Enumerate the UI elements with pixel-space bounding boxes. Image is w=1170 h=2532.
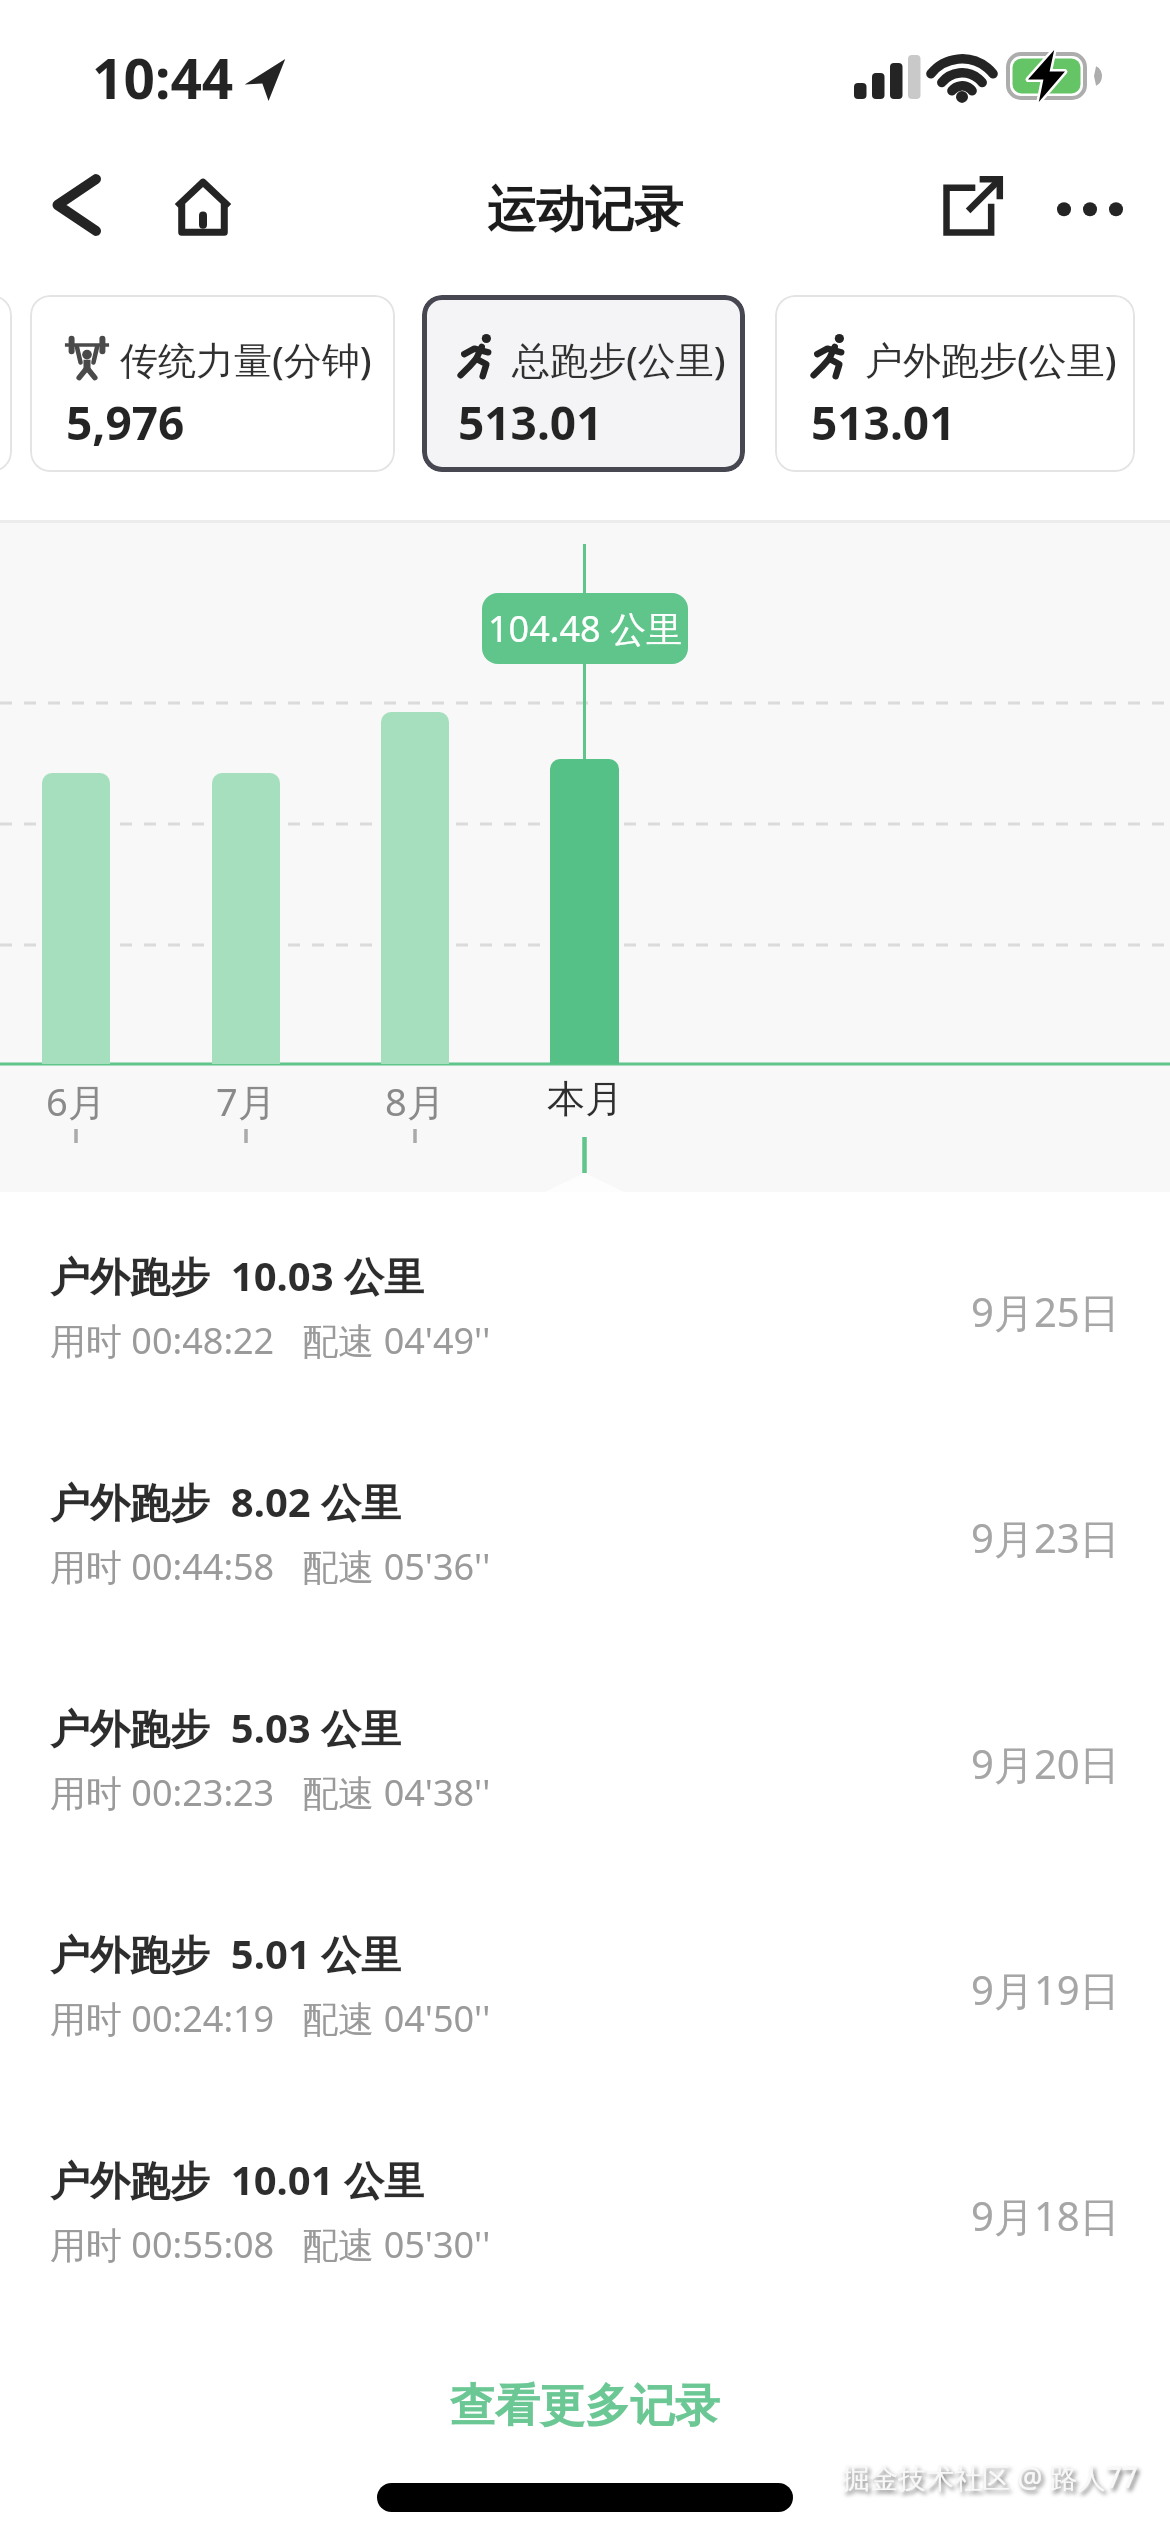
- staticText: 104.48 公里: [488, 604, 682, 653]
- button[interactable]: 查看更多记录: [450, 2378, 720, 2435]
- staticText: 户外跑步 10.01 公里: [50, 2152, 424, 2207]
- button[interactable]: [1050, 178, 1134, 238]
- staticText: 10:44: [92, 40, 234, 115]
- button[interactable]: 户外跑步 5.03 公里: [0, 1644, 1170, 1870]
- staticText: 9月23日: [971, 1510, 1120, 1565]
- staticText: 9月25日: [971, 1284, 1120, 1339]
- staticText: 9月20日: [971, 1736, 1120, 1791]
- button[interactable]: 总跑步(公里): [422, 295, 745, 472]
- button[interactable]: 户外跑步 10.03 公里: [0, 1192, 1170, 1418]
- staticText: 用时 00:24:19 配速 04'50'': [50, 1994, 491, 2043]
- staticText: 查看更多记录: [450, 2378, 720, 2435]
- staticText: 用时 00:44:58 配速 05'36'': [50, 1542, 491, 1591]
- staticText: 9月19日: [971, 1962, 1120, 2017]
- staticText: 6月: [46, 1075, 106, 1127]
- staticText: 户外跑步 5.03 公里: [50, 1700, 402, 1755]
- staticText: 513.01: [811, 391, 956, 454]
- button[interactable]: [165, 170, 241, 246]
- button[interactable]: 户外跑步 10.01 公里: [0, 2096, 1170, 2322]
- button[interactable]: 户外跑步(公里): [775, 295, 1135, 472]
- staticText: 本月: [547, 1075, 623, 1123]
- staticText: 掘金技术社区 @ 路人77: [842, 2458, 1138, 2496]
- button[interactable]: 户外跑步 5.01 公里: [0, 1870, 1170, 2096]
- staticText: 用时 00:23:23 配速 04'38'': [50, 1768, 491, 1817]
- staticText: 8月: [385, 1075, 445, 1127]
- staticText: 用时 00:55:08 配速 05'30'': [50, 2220, 491, 2269]
- staticText: 用时 00:48:22 配速 04'49'': [50, 1316, 491, 1365]
- staticText: 9月18日: [971, 2188, 1120, 2243]
- staticText: 513.01: [458, 391, 603, 454]
- staticText: 户外跑步(公里): [865, 333, 1117, 385]
- staticText: 运动记录: [487, 179, 683, 241]
- staticText: 传统力量(分钟): [120, 333, 372, 385]
- button[interactable]: [935, 172, 1007, 244]
- staticText: 户外跑步 5.01 公里: [50, 1926, 402, 1981]
- button[interactable]: [40, 170, 110, 240]
- staticText: 户外跑步 10.03 公里: [50, 1248, 424, 1303]
- staticText: 7月: [216, 1075, 276, 1127]
- button[interactable]: 传统力量(分钟): [30, 295, 395, 472]
- staticText: 户外跑步 8.02 公里: [50, 1474, 402, 1529]
- staticText: 总跑步(公里): [512, 333, 726, 385]
- staticText: 5,976: [66, 391, 185, 454]
- button[interactable]: 户外跑步 8.02 公里: [0, 1418, 1170, 1644]
